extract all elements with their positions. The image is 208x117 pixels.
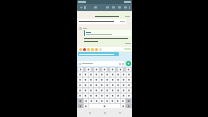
button[interactable]: Nav 2 xyxy=(117,110,122,115)
button[interactable] xyxy=(78,19,126,24)
button[interactable]: Action 2 xyxy=(111,4,116,11)
button[interactable]: Back xyxy=(78,4,84,11)
button[interactable]: React 4 xyxy=(95,48,98,51)
button[interactable]: Action 3 xyxy=(117,4,122,11)
button[interactable]: React 2 xyxy=(87,48,90,51)
button[interactable]: React 3 xyxy=(91,48,94,51)
button[interactable]: Send xyxy=(126,61,131,66)
button[interactable]: Nav 0 xyxy=(87,110,92,115)
button[interactable] xyxy=(83,29,132,46)
button[interactable]: More reactions xyxy=(99,48,102,51)
button[interactable] xyxy=(78,52,119,56)
button[interactable] xyxy=(78,61,125,66)
button[interactable]: Keyboard xyxy=(77,67,132,109)
button[interactable]: Action 1 xyxy=(105,4,110,11)
button[interactable]: Action 0 xyxy=(93,4,98,11)
button[interactable]: Action 5 xyxy=(128,4,131,11)
button[interactable]: Action 4 xyxy=(123,4,128,11)
button[interactable]: Nav 1 xyxy=(102,110,107,115)
button[interactable] xyxy=(94,13,131,19)
button[interactable]: React 1 xyxy=(83,48,86,51)
button[interactable]: React 0 xyxy=(79,48,82,51)
